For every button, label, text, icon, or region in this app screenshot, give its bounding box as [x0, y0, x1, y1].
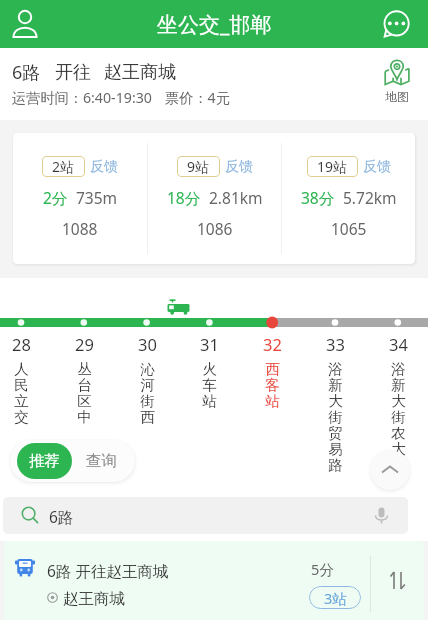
staticText: 西 客 站 [265, 360, 280, 410]
button[interactable]: Reverse direction [371, 541, 424, 620]
staticText: 推荐 [29, 451, 60, 471]
staticText: 31 [200, 333, 219, 355]
button[interactable]: 2站 [13, 133, 147, 264]
staticText: 28 [12, 333, 31, 355]
staticText: 浴 新 大 街 贸 易 路 [328, 360, 343, 474]
button[interactable]: 28 [0, 333, 52, 426]
button[interactable]: 33 [304, 333, 366, 474]
button[interactable]: Profile [3, 2, 47, 46]
staticText: 地图 [385, 89, 409, 104]
staticText: 运营时间：6:40-19:30 [12, 88, 152, 107]
button[interactable]: Scroll up [370, 450, 410, 490]
button[interactable]: 30 [116, 333, 178, 426]
staticText: 29 [75, 333, 94, 355]
staticText: 沁 河 街 西 [140, 360, 155, 426]
staticText: 1088 [62, 218, 98, 239]
staticText: 6路 开往赵王商城 [47, 560, 169, 581]
staticText: 6路 [12, 60, 41, 85]
staticText: 1086 [197, 218, 233, 239]
staticText: 反馈 [225, 158, 253, 176]
staticText: 38分 [301, 187, 335, 208]
staticText: 18分 [167, 187, 201, 208]
staticText: 19站 [317, 157, 348, 176]
button[interactable]: 地图 [381, 57, 413, 105]
staticText: 3站 [324, 588, 347, 608]
staticText: 赵王商城 [104, 61, 176, 84]
staticText: 2.81km [209, 187, 263, 208]
staticText: 2站 [52, 157, 75, 176]
staticText: 1065 [331, 218, 367, 239]
staticText: 34 [389, 333, 408, 355]
staticText: 33 [326, 333, 345, 355]
staticText: 5.72km [343, 187, 397, 208]
staticText: 票价：4元 [165, 88, 230, 107]
button[interactable]: 19站 [282, 133, 415, 264]
button[interactable]: 31 [178, 333, 240, 410]
staticText: 5分 [311, 559, 334, 579]
button[interactable]: 推荐 [17, 443, 72, 479]
button[interactable]: 29 [53, 333, 115, 426]
staticText: 火 车 站 [202, 360, 217, 410]
staticText: 赵王商城 [63, 589, 125, 609]
staticText: 30 [138, 333, 157, 355]
staticText: 735m [76, 187, 118, 208]
staticText: 查询 [86, 451, 117, 471]
staticText: 32 [263, 333, 282, 355]
staticText: 人 民 立 交 [14, 360, 29, 426]
button[interactable]: 6路 开往赵王商城 [4, 541, 424, 620]
button[interactable]: 32 [241, 333, 303, 410]
staticText: 开往 [55, 61, 91, 84]
staticText: 坐公交_邯郸 [157, 10, 272, 39]
staticText: 6路 [49, 506, 74, 527]
staticText: 反馈 [363, 158, 391, 176]
button[interactable]: 34 [367, 333, 428, 458]
staticText: 反馈 [90, 158, 118, 176]
button[interactable]: 查询 [75, 443, 127, 479]
button[interactable]: 9站 [148, 133, 281, 264]
staticText: 浴 新 大 街 农 大 [391, 360, 406, 458]
staticText: 9站 [187, 157, 210, 176]
button[interactable]: 6路 [3, 497, 408, 534]
staticText: 2分 [43, 187, 68, 208]
staticText: 丛 台 区 中 [77, 360, 92, 426]
button[interactable]: Messages [375, 2, 419, 46]
